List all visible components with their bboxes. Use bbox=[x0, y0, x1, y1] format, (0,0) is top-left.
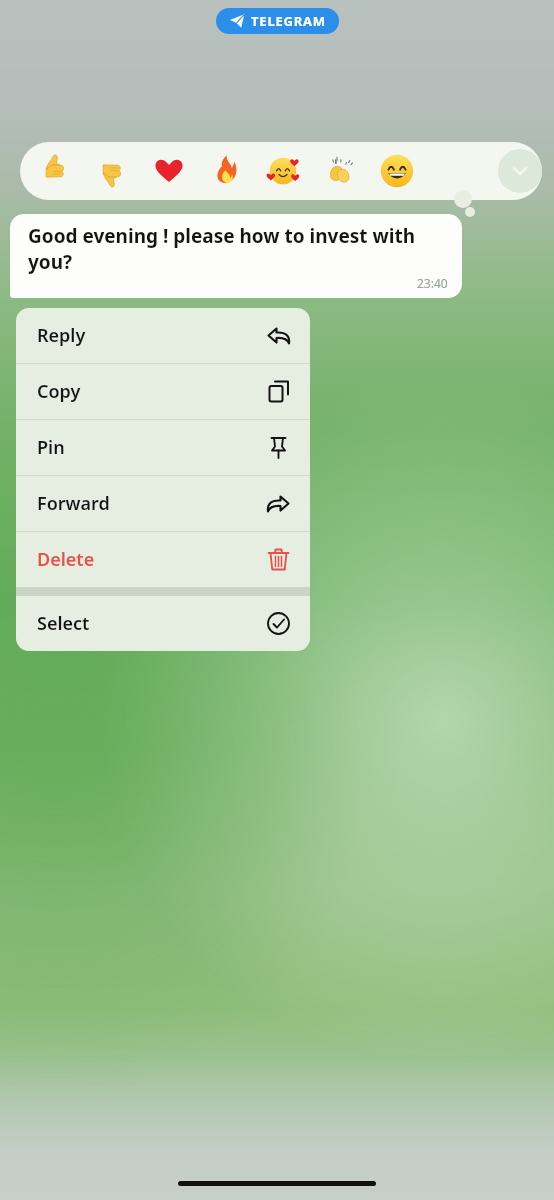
staticText: 23:40 bbox=[417, 275, 448, 291]
button[interactable]: Grin bbox=[374, 148, 420, 194]
staticText: Good evening ! please how to invest with… bbox=[28, 223, 448, 274]
staticText: Select bbox=[37, 611, 90, 636]
button[interactable]: Reply bbox=[16, 308, 310, 363]
staticText: Forward bbox=[37, 491, 110, 516]
button[interactable]: Clap bbox=[317, 148, 363, 194]
button[interactable]: Select bbox=[16, 596, 310, 651]
button[interactable]: More reactions bbox=[498, 149, 542, 193]
staticText: Delete bbox=[37, 547, 95, 572]
button[interactable]: Thumbs down bbox=[89, 148, 135, 194]
staticText: Copy bbox=[37, 379, 81, 404]
staticText: Pin bbox=[37, 435, 65, 460]
button[interactable]: Thumbs up bbox=[32, 148, 78, 194]
button[interactable]: Heart bbox=[146, 148, 192, 194]
button[interactable]: Fire bbox=[203, 148, 249, 194]
button[interactable]: Pin bbox=[16, 420, 310, 475]
button[interactable]: TELEGRAM bbox=[216, 8, 339, 34]
button[interactable]: Delete bbox=[16, 532, 310, 587]
staticText: TELEGRAM bbox=[251, 12, 326, 30]
staticText: Reply bbox=[37, 323, 86, 348]
button[interactable]: Good evening ! please how to invest with… bbox=[10, 214, 462, 298]
button[interactable]: Smiling face with hearts bbox=[260, 148, 306, 194]
button[interactable]: Copy bbox=[16, 364, 310, 419]
button[interactable]: Forward bbox=[16, 476, 310, 531]
